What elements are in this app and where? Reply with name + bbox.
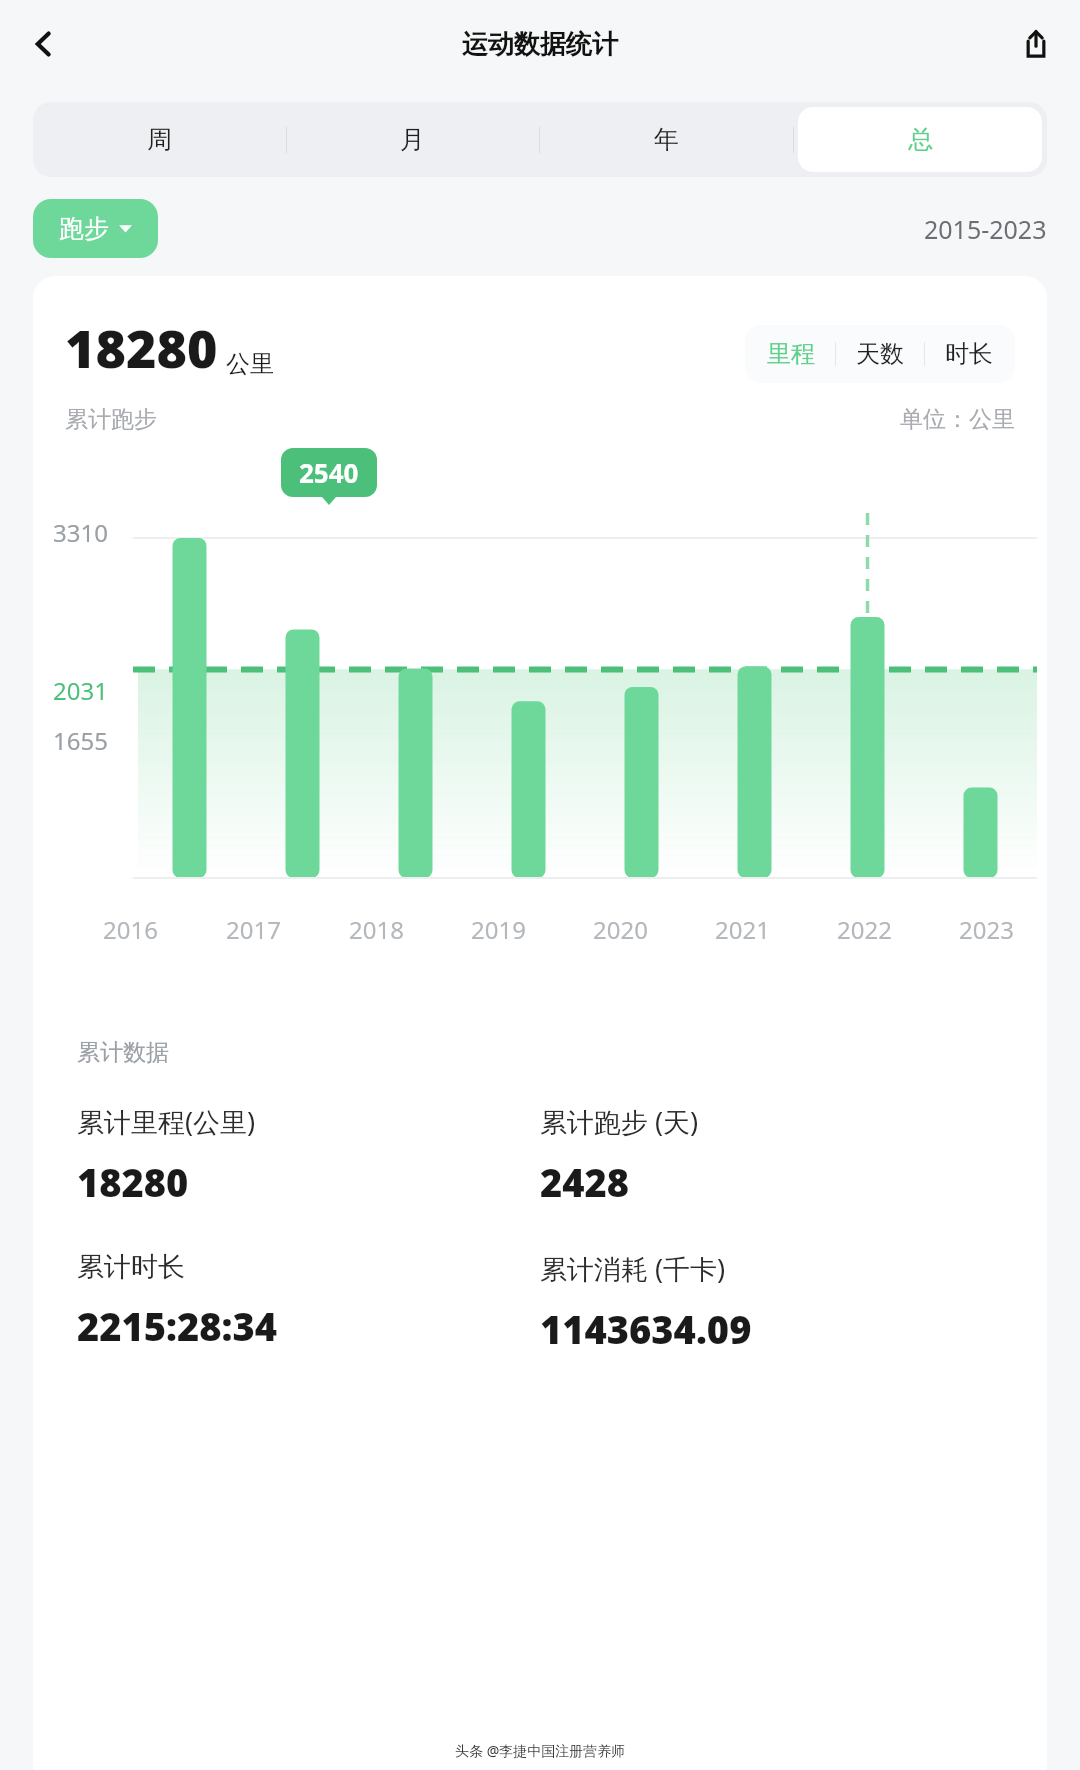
staticText: 18280: [77, 1156, 189, 1208]
staticText: 2015-2023: [924, 212, 1047, 246]
staticText: 2215:28:34: [77, 1300, 278, 1352]
staticText: 时长: [945, 339, 993, 369]
staticText: 累计数据: [77, 1038, 169, 1067]
staticText: 2018: [349, 913, 404, 946]
staticText: 年: [654, 124, 679, 155]
staticText: 天数: [856, 339, 904, 369]
staticText: 运动数据统计: [462, 28, 618, 61]
staticText: 周: [147, 124, 172, 155]
button[interactable]: Share: [1010, 18, 1062, 70]
button[interactable]: 时长: [925, 325, 1013, 383]
staticText: 头条 @李捷中国注册营养师: [455, 1741, 626, 1760]
staticText: 累计跑步 (天): [540, 1103, 699, 1140]
button[interactable]: 周: [38, 107, 281, 172]
staticText: 里程: [767, 339, 815, 369]
staticText: 公里: [226, 349, 274, 379]
staticText: 累计里程(公里): [77, 1103, 256, 1140]
button[interactable]: 年: [544, 107, 788, 172]
staticText: 2428: [540, 1156, 630, 1208]
staticText: 月: [400, 124, 425, 155]
staticText: 跑步: [59, 213, 109, 244]
button[interactable]: 总: [798, 107, 1042, 172]
button[interactable]: 里程: [747, 325, 835, 383]
staticText: 累计消耗 (千卡): [540, 1250, 726, 1287]
staticText: 1655: [53, 724, 108, 757]
staticText: 2023: [959, 913, 1014, 946]
button[interactable]: 月: [291, 107, 534, 172]
staticText: 单位：公里: [900, 405, 1015, 434]
staticText: 1143634.09: [540, 1303, 752, 1355]
staticText: 累计跑步: [65, 405, 157, 434]
button[interactable]: 天数: [836, 325, 924, 383]
staticText: 2022: [837, 913, 892, 946]
staticText: 累计时长: [77, 1250, 185, 1284]
button[interactable]: 跑步: [33, 199, 158, 258]
staticText: 2019: [471, 913, 526, 946]
staticText: 2021: [715, 913, 770, 946]
staticText: 总: [908, 124, 933, 155]
staticText: 2540: [299, 455, 359, 490]
staticText: 2020: [593, 913, 648, 946]
staticText: 3310: [53, 516, 108, 549]
staticText: 2031: [53, 674, 108, 707]
staticText: 2016: [103, 913, 158, 946]
staticText: 18280: [65, 312, 218, 383]
button[interactable]: Back: [18, 18, 70, 70]
staticText: 2017: [226, 913, 281, 946]
